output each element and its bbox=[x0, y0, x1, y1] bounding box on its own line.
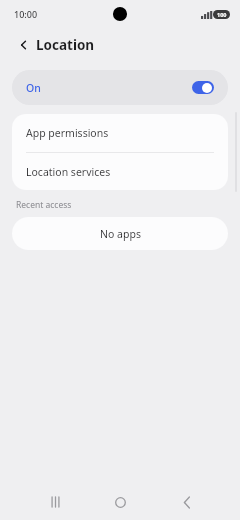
staticText: 10:00 bbox=[14, 8, 38, 20]
staticText: On bbox=[26, 81, 41, 95]
staticText: Location services bbox=[26, 165, 111, 179]
button[interactable]: App permissions bbox=[12, 114, 228, 152]
button[interactable]: Back bbox=[12, 33, 36, 57]
button[interactable]: No apps bbox=[12, 217, 228, 250]
button[interactable]: Home bbox=[108, 490, 132, 514]
staticText: 100 bbox=[217, 11, 227, 18]
staticText: App permissions bbox=[26, 126, 109, 140]
button[interactable]: Recent apps bbox=[43, 490, 67, 514]
staticText: Location bbox=[36, 36, 95, 54]
button[interactable]: Back bbox=[175, 490, 199, 514]
button[interactable]: Location services bbox=[12, 153, 228, 190]
staticText: Recent access bbox=[16, 199, 72, 211]
staticText: No apps bbox=[100, 227, 141, 241]
button[interactable]: On bbox=[12, 70, 228, 105]
